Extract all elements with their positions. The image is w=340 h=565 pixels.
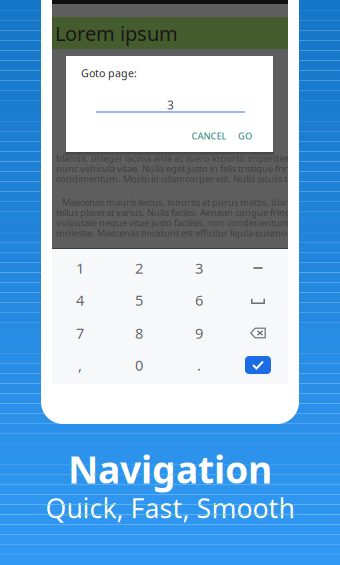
- staticText: nunc vehicula vitae. Nulla eget justo in…: [56, 162, 307, 175]
- staticText: Quick, Fast, Smooth: [45, 490, 294, 526]
- button[interactable]: Backspace: [238, 321, 278, 345]
- staticText: tellus placerat varius. Nulla facilisi. …: [56, 206, 302, 219]
- staticText: 3: [167, 97, 174, 113]
- staticText: Maecenas mauris lectus, lobortis et puru…: [56, 196, 301, 208]
- staticText: 9: [195, 323, 203, 343]
- button[interactable]: 2: [119, 256, 159, 280]
- button[interactable]: 7: [60, 321, 100, 345]
- button[interactable]: 6: [179, 288, 219, 312]
- button[interactable]: 8: [119, 321, 159, 345]
- staticText: ,: [78, 355, 82, 375]
- staticText: 5: [135, 290, 143, 310]
- button[interactable]: 0: [119, 353, 159, 377]
- staticText: 3: [195, 258, 203, 278]
- staticText: GO: [238, 130, 252, 142]
- staticText: molestie. Maecenas tincidunt est efficit…: [56, 227, 307, 239]
- staticText: 2: [135, 258, 143, 278]
- staticText: 7: [76, 323, 84, 343]
- button[interactable]: Space: [238, 288, 278, 312]
- staticText: vulputate neque vitae justo facilisis, n…: [56, 216, 310, 229]
- staticText: Goto page:: [81, 66, 137, 80]
- staticText: 0: [135, 355, 143, 375]
- button[interactable]: 5: [119, 288, 159, 312]
- button[interactable]: 9: [179, 321, 219, 345]
- button[interactable]: CANCEL: [186, 130, 232, 142]
- staticText: 8: [135, 323, 143, 343]
- staticText: .: [197, 355, 201, 375]
- staticText: Navigation: [68, 444, 272, 494]
- button[interactable]: 3: [179, 256, 219, 280]
- button[interactable]: ,: [60, 353, 100, 377]
- staticText: CANCEL: [191, 130, 226, 142]
- button[interactable]: 1: [60, 256, 100, 280]
- staticText: condimentum. Morbi in ullamcorper elit. …: [56, 172, 312, 185]
- button[interactable]: 4: [60, 288, 100, 312]
- button[interactable]: GO: [235, 130, 255, 142]
- staticText: 4: [76, 290, 84, 310]
- button[interactable]: .: [179, 353, 219, 377]
- staticText: blandit. Integer lacinia ante ac libero …: [56, 152, 315, 164]
- staticText: Lorem ipsum: [55, 20, 178, 47]
- staticText: 6: [195, 290, 203, 310]
- button[interactable]: Enter: [238, 353, 278, 377]
- button[interactable]: Minus: [238, 256, 278, 280]
- staticText: 1: [76, 258, 84, 278]
